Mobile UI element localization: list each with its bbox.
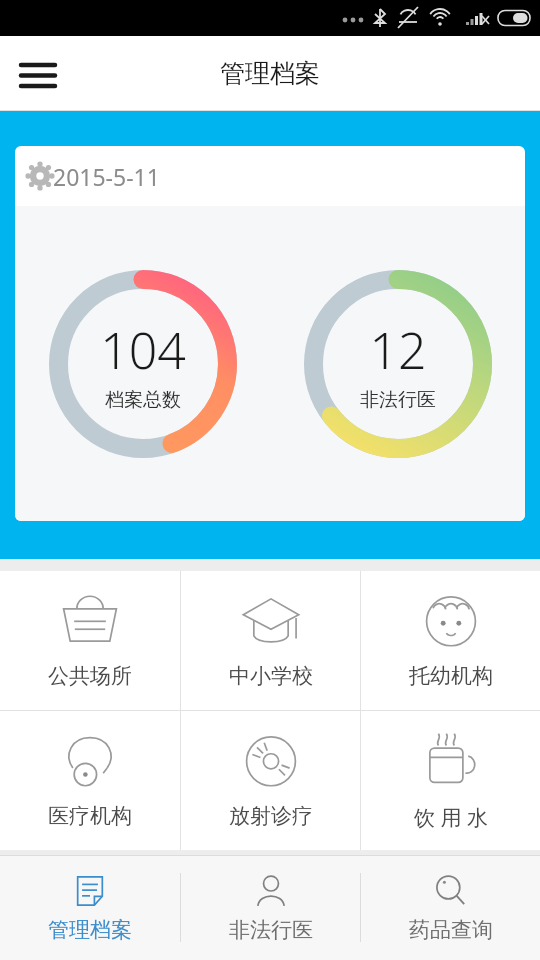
button[interactable]: Drinking water <box>361 711 540 850</box>
staticText: 104 <box>100 316 186 384</box>
other: Schools <box>238 587 304 653</box>
other: Public places <box>57 587 123 653</box>
staticText: 2015-5-11 <box>53 161 160 192</box>
button[interactable]: 管理档案 <box>0 855 180 960</box>
button[interactable]: Childcare <box>361 571 540 710</box>
button[interactable]: Medical <box>0 711 180 850</box>
other: Medical <box>57 727 123 793</box>
button[interactable]: 非法行医 <box>181 855 360 960</box>
staticText: 公共场所 <box>48 663 132 689</box>
staticText: 非法行医 <box>229 917 313 943</box>
button[interactable]: Radiology <box>181 711 360 850</box>
button[interactable]: Schools <box>181 571 360 710</box>
staticText: 档案总数 <box>105 388 181 412</box>
other: Drinking water <box>418 727 484 793</box>
staticText: 医疗机构 <box>48 803 132 829</box>
staticText: 托幼机构 <box>409 663 493 689</box>
staticText: 放射诊疗 <box>229 803 313 829</box>
button[interactable]: 药品查询 <box>361 855 540 960</box>
button[interactable]: Menu <box>10 45 66 101</box>
staticText: 管理档案 <box>48 917 132 943</box>
staticText: 非法行医 <box>360 388 436 412</box>
staticText: 管理档案 <box>220 58 320 89</box>
other: Childcare <box>418 587 484 653</box>
staticText: 药品查询 <box>409 917 493 943</box>
staticText: 12 <box>369 316 427 384</box>
button[interactable]: Public places <box>0 571 180 710</box>
staticText: 饮 用 水 <box>414 803 488 832</box>
other: Radiology <box>238 727 304 793</box>
staticText: 中小学校 <box>229 663 313 689</box>
